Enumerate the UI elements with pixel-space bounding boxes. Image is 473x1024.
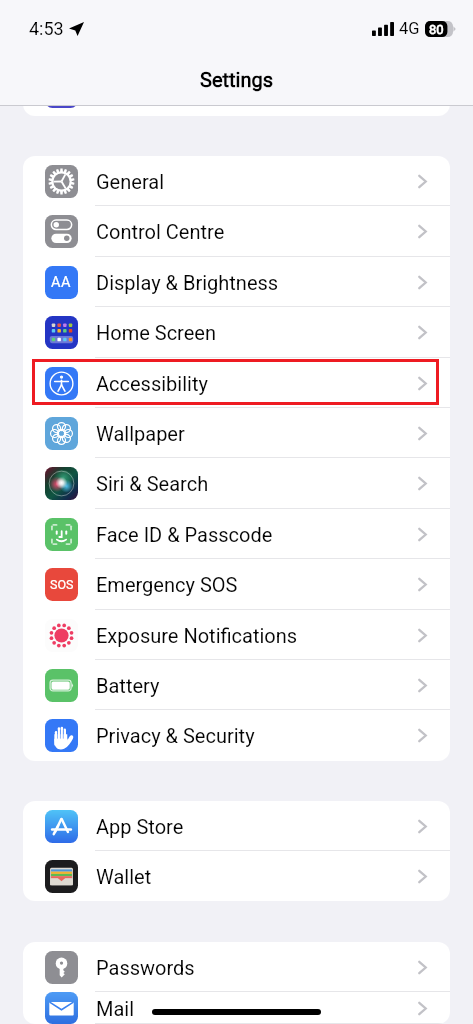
button[interactable]: Apple ID xyxy=(23,66,450,116)
button[interactable]: Wallet xyxy=(23,851,450,901)
button[interactable]: Home Screen xyxy=(23,307,450,358)
button[interactable]: Passwords xyxy=(23,942,450,992)
staticText: Accessibility xyxy=(96,372,208,395)
button[interactable]: Face ID & Passcode xyxy=(23,509,450,559)
button[interactable]: Mail xyxy=(23,992,450,1024)
staticText: Privacy & Security xyxy=(96,724,255,747)
staticText: Mail xyxy=(96,997,135,1020)
button[interactable]: Accessibility xyxy=(23,358,450,408)
staticText: AA xyxy=(51,274,72,291)
staticText: Control Centre xyxy=(96,220,225,243)
button[interactable]: Control Centre xyxy=(23,206,450,257)
staticText: Wallet xyxy=(96,865,152,888)
button[interactable]: Exposure Notifications xyxy=(23,610,450,660)
staticText: General xyxy=(96,170,165,193)
staticText: Emergency SOS xyxy=(96,573,238,596)
button[interactable]: Privacy & Security xyxy=(23,710,450,761)
button[interactable]: General xyxy=(23,156,450,206)
staticText: 4:53 xyxy=(29,18,64,39)
staticText: Settings xyxy=(200,68,274,91)
button[interactable]: App Store xyxy=(23,801,450,851)
staticText: App Store xyxy=(96,815,184,838)
staticText: Siri & Search xyxy=(96,472,209,495)
staticText: Battery xyxy=(96,674,160,697)
staticText: Home Screen xyxy=(96,321,216,344)
button[interactable]: Wallpaper xyxy=(23,408,450,458)
button[interactable]: Battery xyxy=(23,660,450,710)
staticText: Face ID & Passcode xyxy=(96,523,273,546)
staticText: 80 xyxy=(429,22,444,37)
button[interactable]: Siri & Search xyxy=(23,458,450,509)
staticText: SOS xyxy=(50,577,74,592)
staticText: Wallpaper xyxy=(96,422,185,445)
staticText: Passwords xyxy=(96,956,195,979)
staticText: Exposure Notifications xyxy=(96,624,298,647)
button[interactable]: AA xyxy=(23,257,450,307)
staticText: 4G xyxy=(399,19,420,38)
button[interactable]: SOS xyxy=(23,559,450,610)
staticText: Display & Brightness xyxy=(96,271,279,294)
